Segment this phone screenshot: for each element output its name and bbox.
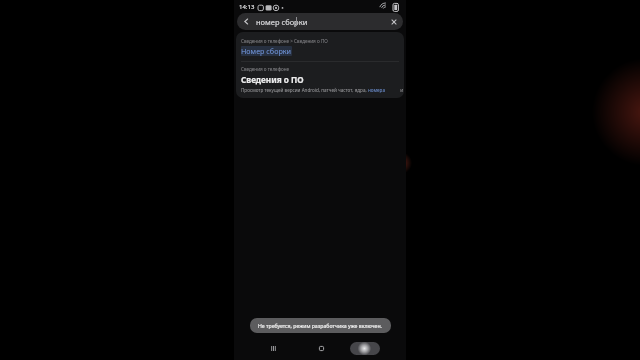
staticText: Не требуется, режим разработчика уже вкл…: [258, 322, 383, 329]
button[interactable]: Сведения о телефоне: [236, 65, 404, 94]
button[interactable]: Назад: [241, 16, 252, 27]
staticText: Сведения о ПО: [241, 74, 304, 85]
button[interactable]: Главный экран: [308, 340, 334, 357]
button[interactable]: Последние приложения: [260, 340, 286, 357]
staticText: номер сборки: [256, 17, 308, 27]
staticText: Просмотр текущей версии Android, патчей …: [241, 87, 368, 93]
staticText: Сведения о телефоне > Сведения о ПО: [241, 38, 328, 44]
staticText: Сведения о телефоне: [241, 66, 290, 72]
button[interactable]: Сведения о телефоне > Сведения о ПО: [236, 36, 404, 58]
staticText: номера сборки: [368, 87, 399, 93]
staticText: Номер сборки: [241, 46, 292, 56]
button[interactable]: Очистить: [388, 16, 399, 27]
button[interactable]: Назад: [237, 13, 403, 30]
button[interactable]: Назад: [350, 342, 380, 355]
staticText: 14:13: [239, 3, 255, 11]
